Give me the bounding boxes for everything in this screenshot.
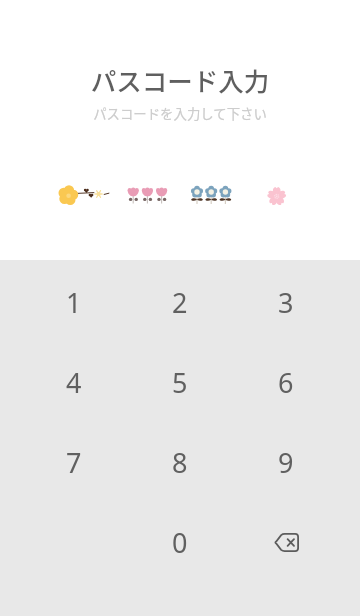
button[interactable]: Backspace xyxy=(233,502,339,582)
staticText: 6 xyxy=(278,364,294,401)
staticText: 2 xyxy=(172,284,188,321)
staticText: 8 xyxy=(172,444,188,481)
button[interactable]: 5 xyxy=(127,342,233,422)
staticText: パスコード入力 xyxy=(0,61,360,98)
staticText: 5 xyxy=(172,364,188,401)
button[interactable]: 8 xyxy=(127,422,233,502)
staticText: 7 xyxy=(66,444,82,481)
staticText: 0 xyxy=(172,524,188,561)
button[interactable]: 9 xyxy=(233,422,339,502)
button[interactable]: 2 xyxy=(127,262,233,342)
button[interactable]: 4 xyxy=(21,342,127,422)
button[interactable]: 1 xyxy=(21,262,127,342)
button[interactable]: 7 xyxy=(21,422,127,502)
staticText: 4 xyxy=(66,364,82,401)
button[interactable]: 3 xyxy=(233,262,339,342)
button[interactable]: 6 xyxy=(233,342,339,422)
staticText: パスコードを入力して下さい xyxy=(0,103,360,122)
staticText: 3 xyxy=(278,284,294,321)
staticText: 9 xyxy=(278,444,294,481)
staticText: 1 xyxy=(66,284,82,321)
button[interactable]: 0 xyxy=(127,502,233,582)
